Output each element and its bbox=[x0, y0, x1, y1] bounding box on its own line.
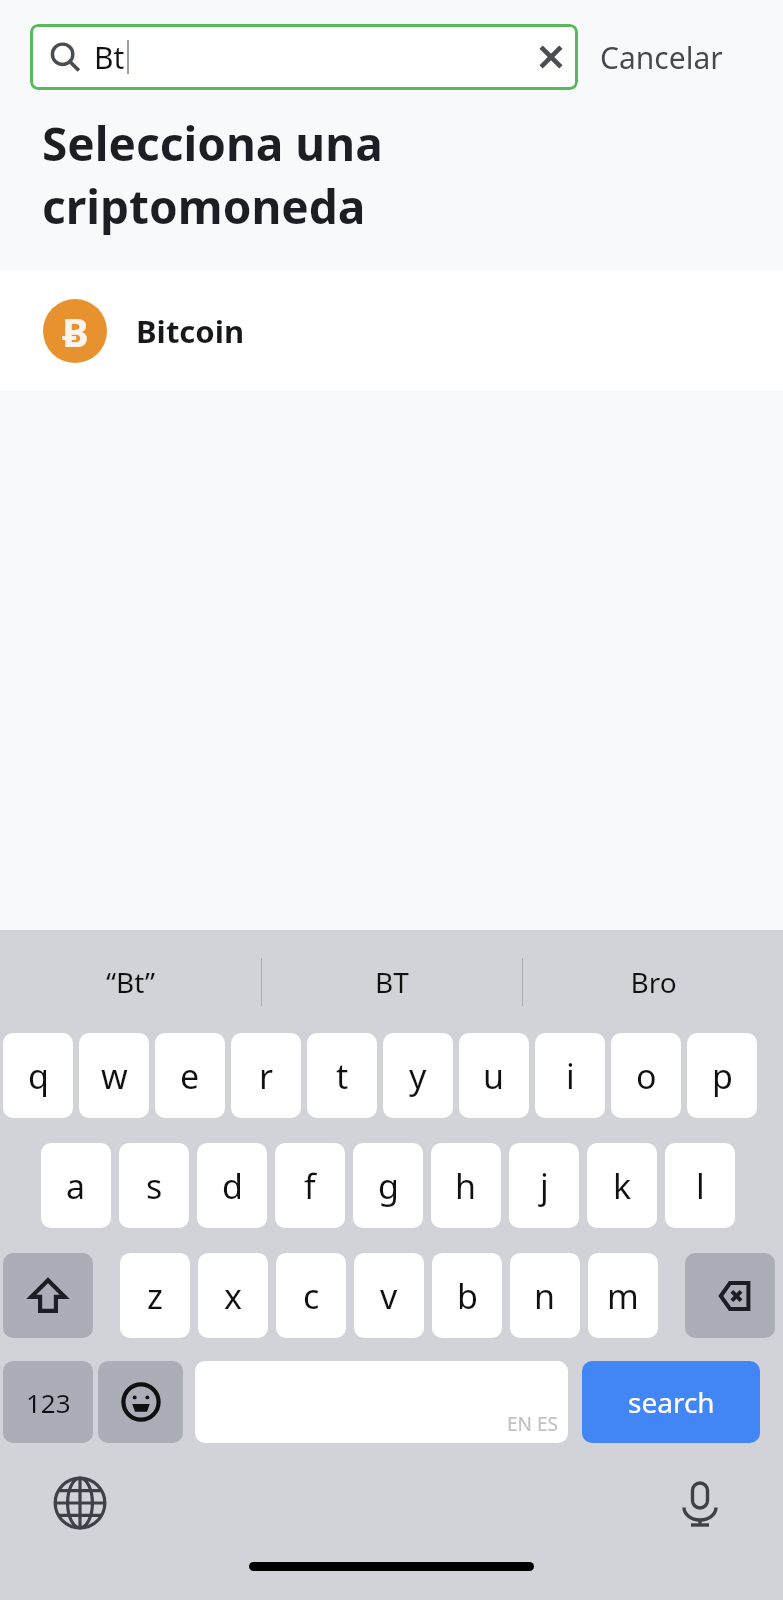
staticText: b bbox=[457, 1273, 478, 1319]
button[interactable]: y bbox=[383, 1033, 453, 1118]
staticText: c bbox=[303, 1273, 320, 1319]
button[interactable]: Clear search bbox=[524, 30, 578, 84]
button[interactable]: f bbox=[275, 1143, 345, 1228]
staticText: Bt bbox=[94, 37, 125, 78]
staticText: m bbox=[607, 1273, 639, 1319]
staticText: search bbox=[628, 1383, 715, 1421]
button[interactable]: u bbox=[459, 1033, 529, 1118]
staticText: f bbox=[304, 1163, 316, 1209]
button[interactable]: k bbox=[587, 1143, 657, 1228]
button[interactable]: Voice input bbox=[668, 1471, 732, 1535]
button[interactable]: h bbox=[431, 1143, 501, 1228]
staticText: h bbox=[455, 1163, 477, 1209]
button[interactable]: s bbox=[119, 1143, 189, 1228]
staticText: x bbox=[224, 1273, 242, 1319]
button[interactable]: i bbox=[535, 1033, 605, 1118]
staticText: v bbox=[380, 1273, 398, 1319]
button[interactable]: BT bbox=[262, 930, 522, 1033]
button[interactable]: n bbox=[510, 1253, 580, 1338]
button[interactable]: Shift bbox=[3, 1253, 93, 1338]
button[interactable]: Bt bbox=[30, 24, 578, 90]
staticText: s bbox=[146, 1163, 163, 1209]
button[interactable]: q bbox=[3, 1033, 73, 1118]
staticText: r bbox=[259, 1053, 274, 1099]
button[interactable]: v bbox=[354, 1253, 424, 1338]
staticText: g bbox=[378, 1163, 399, 1209]
staticText: p bbox=[712, 1053, 733, 1099]
button[interactable]: 123 bbox=[3, 1361, 93, 1443]
staticText: e bbox=[180, 1053, 200, 1099]
button[interactable]: d bbox=[197, 1143, 267, 1228]
staticText: Bitcoin bbox=[136, 310, 245, 352]
button[interactable]: Bro bbox=[523, 930, 783, 1033]
button[interactable]: Change language bbox=[48, 1471, 112, 1535]
button[interactable]: z bbox=[120, 1253, 190, 1338]
button[interactable]: r bbox=[231, 1033, 301, 1118]
button[interactable]: e bbox=[155, 1033, 225, 1118]
button[interactable]: Emoji bbox=[98, 1361, 183, 1443]
staticText: q bbox=[28, 1053, 49, 1099]
staticText: 123 bbox=[26, 1385, 71, 1420]
staticText: u bbox=[483, 1053, 505, 1099]
staticText: d bbox=[222, 1163, 243, 1209]
staticText: o bbox=[636, 1053, 657, 1099]
staticText: EN ES bbox=[507, 1411, 558, 1437]
button[interactable]: Space bbox=[195, 1361, 568, 1443]
button[interactable]: o bbox=[611, 1033, 681, 1118]
staticText: Bro bbox=[630, 963, 677, 1001]
staticText: k bbox=[613, 1163, 632, 1209]
staticText: i bbox=[566, 1053, 575, 1099]
button[interactable]: x bbox=[198, 1253, 268, 1338]
button[interactable]: a bbox=[41, 1143, 111, 1228]
staticText: criptomoneda bbox=[42, 175, 366, 238]
button[interactable]: Ƀ bbox=[0, 270, 783, 391]
staticText: a bbox=[66, 1163, 86, 1209]
staticText: Cancelar bbox=[600, 37, 723, 78]
staticText: BT bbox=[375, 963, 409, 1001]
button[interactable]: search bbox=[582, 1361, 760, 1443]
staticText: t bbox=[336, 1053, 349, 1099]
button[interactable]: l bbox=[665, 1143, 735, 1228]
staticText: Ƀ bbox=[62, 304, 89, 358]
staticText: “Bt” bbox=[106, 963, 155, 1001]
button[interactable]: Backspace bbox=[685, 1253, 775, 1338]
button[interactable]: b bbox=[432, 1253, 502, 1338]
button[interactable]: j bbox=[509, 1143, 579, 1228]
staticText: Selecciona una bbox=[42, 112, 383, 175]
button[interactable]: p bbox=[687, 1033, 757, 1118]
staticText: n bbox=[534, 1273, 556, 1319]
staticText: l bbox=[696, 1163, 705, 1209]
button[interactable]: t bbox=[307, 1033, 377, 1118]
staticText: y bbox=[409, 1053, 427, 1099]
staticText: j bbox=[540, 1163, 549, 1209]
button[interactable]: w bbox=[79, 1033, 149, 1118]
button[interactable]: Cancelar bbox=[600, 24, 723, 90]
button[interactable]: m bbox=[588, 1253, 658, 1338]
staticText: z bbox=[147, 1273, 163, 1319]
button[interactable]: g bbox=[353, 1143, 423, 1228]
button[interactable]: c bbox=[276, 1253, 346, 1338]
button[interactable]: “Bt” bbox=[0, 930, 261, 1033]
staticText: w bbox=[101, 1053, 128, 1099]
